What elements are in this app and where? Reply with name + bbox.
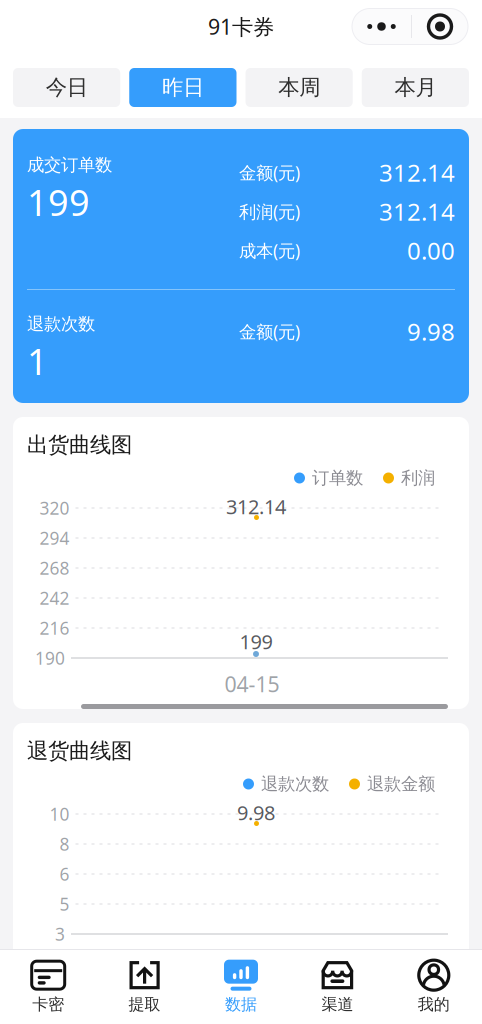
- staticText: 本周: [278, 74, 320, 101]
- staticText: 数据: [225, 995, 257, 1014]
- button[interactable]: 今日: [13, 68, 120, 107]
- staticText: 190: [35, 646, 65, 669]
- staticText: 199: [27, 178, 90, 226]
- staticText: 昨日: [162, 74, 204, 101]
- staticText: 订单数: [312, 467, 363, 489]
- staticText: 卡密: [32, 995, 64, 1014]
- button[interactable]: 我的: [386, 950, 482, 1024]
- staticText: 金额(元): [239, 320, 300, 343]
- staticText: 320: [39, 496, 69, 519]
- staticText: 91卡券: [208, 12, 274, 41]
- staticText: 0.00: [407, 235, 455, 266]
- staticText: 成本(元): [239, 239, 300, 262]
- staticText: 提取: [129, 995, 161, 1014]
- staticText: 退款次数: [27, 313, 95, 335]
- button[interactable]: 卡密: [0, 950, 96, 1024]
- staticText: 242: [39, 586, 69, 609]
- staticText: 312.14: [226, 493, 286, 520]
- staticText: 216: [39, 616, 69, 639]
- staticText: 10: [49, 802, 69, 825]
- button[interactable]: 本周: [245, 68, 353, 107]
- staticText: 渠道: [321, 995, 353, 1014]
- staticText: 出货曲线图: [27, 432, 132, 458]
- staticText: 今日: [46, 74, 88, 101]
- staticText: 312.14: [379, 196, 455, 227]
- button[interactable]: 本月: [362, 68, 469, 107]
- staticText: 8: [59, 832, 69, 855]
- staticText: 268: [39, 556, 69, 579]
- staticText: 312.14: [379, 157, 455, 188]
- staticText: 退货曲线图: [27, 738, 132, 764]
- staticText: 金额(元): [239, 161, 300, 184]
- staticText: 294: [39, 526, 69, 549]
- staticText: 本月: [394, 74, 436, 101]
- staticText: 3: [55, 922, 65, 945]
- button[interactable]: 更多: [352, 8, 468, 44]
- staticText: 利润(元): [239, 200, 300, 223]
- staticText: 6: [59, 862, 69, 885]
- staticText: 199: [239, 628, 272, 655]
- staticText: 退款金额: [367, 773, 435, 795]
- staticText: 5: [59, 892, 69, 915]
- button[interactable]: 昨日: [129, 68, 236, 107]
- staticText: 成交订单数: [27, 154, 112, 176]
- staticText: 退款次数: [261, 773, 329, 795]
- button[interactable]: 渠道: [289, 950, 386, 1024]
- staticText: 9.98: [407, 316, 455, 347]
- staticText: 1: [27, 337, 48, 385]
- button[interactable]: 数据: [193, 950, 289, 1024]
- staticText: 利润: [401, 467, 435, 489]
- staticText: 我的: [418, 995, 450, 1014]
- staticText: 9.98: [237, 799, 275, 826]
- staticText: 04-15: [224, 670, 279, 698]
- button[interactable]: 提取: [96, 950, 193, 1024]
